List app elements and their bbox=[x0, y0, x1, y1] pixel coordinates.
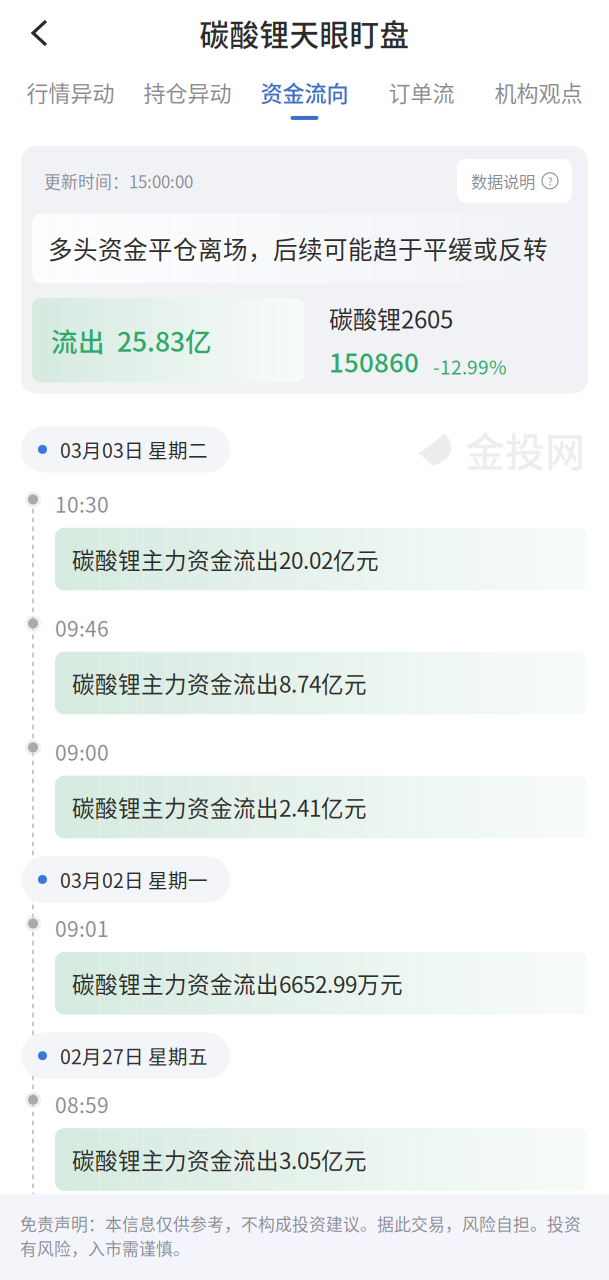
staticText: 02月27日 星期五 bbox=[60, 1042, 208, 1070]
staticText: 持仓异动 bbox=[143, 76, 231, 108]
staticText: 碳酸锂主力资金流出20.02亿元 bbox=[72, 543, 379, 575]
staticText: 09:00 bbox=[55, 736, 109, 767]
staticText: 订单流 bbox=[388, 76, 454, 108]
button[interactable]: 机构观点 bbox=[480, 72, 597, 124]
staticText: 150860 bbox=[329, 342, 419, 380]
button[interactable]: 行情异动 bbox=[12, 72, 129, 124]
staticText: 09:46 bbox=[55, 612, 109, 643]
button[interactable]: 持仓异动 bbox=[129, 72, 246, 124]
button[interactable]: 订单流 bbox=[363, 72, 480, 124]
staticText: 10:30 bbox=[55, 488, 109, 519]
staticText: 多头资金平仓离场，后续可能趋于平缓或反转 bbox=[48, 231, 548, 266]
staticText: 更新时间：15:00:00 bbox=[44, 169, 193, 193]
staticText: 碳酸锂主力资金流出3.05亿元 bbox=[72, 1143, 367, 1176]
staticText: 资金流向 bbox=[260, 76, 348, 108]
button[interactable]: 09:00 bbox=[0, 736, 609, 838]
staticText: 03月03日 星期二 bbox=[60, 435, 208, 463]
staticText: 行情异动 bbox=[26, 76, 114, 108]
staticText: 免责声明：本信息仅供参考，不构成投资建议。据此交易，风险自担。投资有风险，入市需… bbox=[20, 1211, 581, 1260]
staticText: 数据说明 bbox=[471, 169, 535, 193]
staticText: ? bbox=[547, 173, 552, 188]
staticText: 碳酸锂主力资金流出2.41亿元 bbox=[72, 791, 367, 823]
button[interactable]: 09:01 bbox=[0, 913, 609, 1015]
button[interactable]: 资金流向 bbox=[246, 72, 363, 124]
staticText: 碳酸锂2605 bbox=[329, 301, 453, 335]
button[interactable]: 08:59 bbox=[0, 1089, 609, 1191]
staticText: 碳酸锂主力资金流出8.74亿元 bbox=[72, 667, 367, 699]
staticText: -12.99% bbox=[433, 352, 506, 380]
staticText: 流出 25.83亿 bbox=[51, 321, 212, 359]
staticText: 机构观点 bbox=[494, 76, 582, 108]
staticText: 金投网 bbox=[465, 420, 585, 478]
button[interactable]: 数据说明 bbox=[457, 159, 572, 203]
button[interactable]: 10:30 bbox=[0, 488, 609, 590]
staticText: 09:01 bbox=[55, 913, 109, 943]
staticText: 03月02日 星期一 bbox=[60, 865, 208, 893]
staticText: 碳酸锂主力资金流出6652.99万元 bbox=[72, 967, 403, 1000]
button[interactable]: Back bbox=[0, 7, 67, 59]
button[interactable]: 09:46 bbox=[0, 612, 609, 714]
staticText: 碳酸锂天眼盯盘 bbox=[199, 12, 409, 54]
staticText: 08:59 bbox=[55, 1089, 109, 1119]
